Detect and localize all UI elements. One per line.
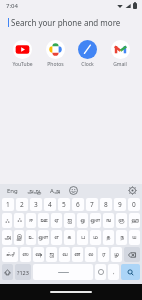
button[interactable]: ஊ (38, 213, 49, 228)
staticText: அ (4, 234, 11, 241)
button[interactable]: வ (59, 247, 70, 262)
staticText: 6 (76, 200, 80, 209)
button[interactable]: ஸ்ரீ (2, 247, 18, 262)
button[interactable]: Shift (2, 264, 13, 280)
button[interactable]: க (64, 230, 75, 245)
staticText: ஔ (38, 234, 49, 241)
button[interactable]: 1 (2, 198, 14, 211)
staticText: ஞ (118, 217, 125, 224)
button[interactable]: ஃ (2, 213, 12, 228)
button[interactable]: ஈ (26, 213, 36, 228)
button[interactable]: ழ (111, 247, 122, 262)
staticText: ல (88, 251, 94, 258)
staticText: உ (28, 234, 34, 241)
staticText: Photos (47, 61, 64, 68)
button[interactable]: Gmail (105, 37, 135, 70)
button[interactable]: 0 (128, 198, 140, 211)
button[interactable]: Emoji keyboard (95, 264, 106, 280)
staticText: Clock (81, 61, 94, 68)
staticText: ஷ (35, 251, 42, 258)
button[interactable]: ர (98, 247, 109, 262)
button[interactable]: , (108, 264, 119, 280)
button[interactable]: ல (85, 247, 96, 262)
button[interactable]: ய (129, 230, 140, 245)
staticText: 2 (20, 200, 24, 209)
staticText: இ (16, 234, 22, 241)
button[interactable]: ஔ (90, 213, 101, 228)
button[interactable]: ஏ (51, 213, 62, 228)
button[interactable]: Search (121, 264, 140, 280)
button[interactable]: 7 (86, 198, 98, 211)
staticText: 4 (48, 200, 52, 209)
button[interactable]: ப (77, 230, 88, 245)
button[interactable]: எ (51, 230, 62, 245)
button[interactable]: இ (14, 230, 24, 245)
staticText: ?123 (17, 269, 29, 276)
staticText: ஐ (67, 217, 72, 224)
staticText: ந (120, 234, 124, 241)
button[interactable]: ந (116, 230, 127, 245)
button[interactable]: 8 (100, 198, 112, 211)
staticText: வ (62, 251, 68, 258)
staticText: ழ (114, 251, 119, 258)
button[interactable]: உ (26, 230, 36, 245)
button[interactable]: 5 (58, 198, 70, 211)
staticText: 8 (104, 200, 108, 209)
staticText: ஜ (49, 251, 54, 258)
button[interactable]: ன (72, 247, 83, 262)
staticText: ஃ (17, 217, 22, 224)
staticText: ப (81, 234, 85, 241)
button[interactable]: Transliteration (49, 187, 62, 195)
staticText: ஊ (40, 217, 48, 224)
button[interactable]: ஜ (46, 247, 57, 262)
button[interactable]: ஹ (129, 213, 140, 228)
staticText: ஃ (5, 218, 10, 224)
staticText: 0 (132, 200, 136, 209)
button[interactable]: ஸ (20, 247, 31, 262)
button[interactable]: Settings (128, 186, 137, 195)
button[interactable]: Clock (72, 37, 102, 70)
button[interactable]: Photos (40, 37, 70, 70)
button[interactable]: அ (2, 230, 12, 245)
button[interactable]: ?123 (15, 264, 31, 280)
button[interactable]: Backspace (124, 247, 140, 262)
button[interactable]: YouTube (7, 37, 37, 70)
staticText: ன (74, 251, 81, 258)
button[interactable]: Emoji (69, 186, 78, 195)
staticText: ஔ (90, 217, 101, 224)
button[interactable]: 6 (72, 198, 84, 211)
staticText: த (106, 234, 111, 241)
button[interactable]: 4 (44, 198, 56, 211)
staticText: Gmail (113, 61, 127, 68)
staticText: , (113, 268, 115, 276)
staticText: ஸ்ரீ (6, 252, 15, 258)
staticText: ஓ (80, 217, 86, 224)
button[interactable]: த (103, 230, 114, 245)
staticText: 5 (62, 200, 66, 209)
button[interactable]: 2 (16, 198, 28, 211)
button[interactable]: ஃ (14, 213, 24, 228)
button[interactable]: ஞ (116, 213, 127, 228)
button[interactable]: ஐ (64, 213, 75, 228)
staticText: ஏ (54, 217, 59, 224)
button[interactable]: Eng (5, 186, 20, 196)
button[interactable]: Tamil language (26, 188, 43, 194)
staticText: Search your phone and more (11, 17, 121, 28)
button[interactable]: ங (103, 213, 114, 228)
button[interactable]: ம (90, 230, 101, 245)
button[interactable]: 9 (114, 198, 126, 211)
staticText: 1 (6, 200, 10, 209)
button[interactable]: ஷ (33, 247, 44, 262)
button[interactable]: ஔ (38, 230, 49, 245)
staticText: ய (132, 234, 137, 241)
button[interactable]: Space (33, 264, 93, 280)
staticText: Aஅ (50, 187, 61, 195)
staticText: ஸ (22, 251, 29, 258)
button[interactable]: ஓ (77, 213, 88, 228)
button[interactable]: 3 (30, 198, 42, 211)
staticText: YouTube (12, 61, 33, 68)
staticText: 9 (118, 200, 122, 209)
staticText: 3 (34, 200, 38, 209)
staticText: 7:04 (6, 2, 18, 10)
staticText: ம (93, 234, 98, 241)
